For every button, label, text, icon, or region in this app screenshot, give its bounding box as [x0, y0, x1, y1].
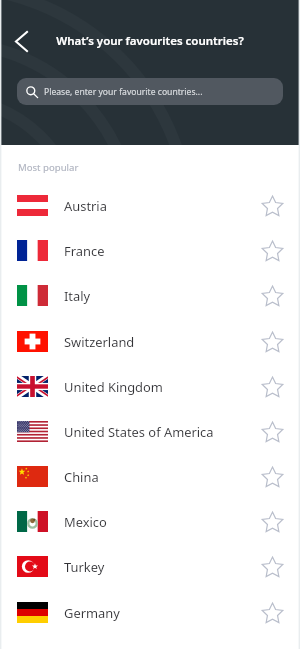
button[interactable]: Mexico — [0, 499, 300, 544]
staticText: Please, enter your favourite countries..… — [44, 86, 203, 98]
button[interactable]: Please, enter your favourite countries..… — [17, 78, 283, 105]
staticText: China — [64, 468, 252, 486]
button[interactable]: Favourite Switzerland — [252, 322, 292, 362]
button[interactable]: Favourite Mexico — [252, 502, 292, 542]
button[interactable]: United Kingdom — [0, 364, 300, 409]
staticText: Mexico — [64, 513, 252, 531]
button[interactable]: Italy — [0, 273, 300, 318]
staticText: France — [64, 242, 252, 260]
button[interactable]: Favourite France — [252, 231, 292, 271]
button[interactable]: Back — [0, 20, 42, 62]
staticText: Germany — [64, 604, 252, 622]
staticText: United States of America — [64, 423, 252, 441]
button[interactable]: United States of America — [0, 409, 300, 454]
button[interactable]: Austria — [0, 183, 300, 228]
button[interactable]: Favourite Italy — [252, 276, 292, 316]
button[interactable]: Germany — [0, 590, 300, 635]
button[interactable]: China — [0, 454, 300, 499]
button[interactable]: Turkey — [0, 544, 300, 589]
staticText: United Kingdom — [64, 378, 252, 396]
staticText: Switzerland — [64, 333, 252, 351]
button[interactable]: France — [0, 228, 300, 273]
button[interactable]: Favourite United Kingdom — [252, 367, 292, 407]
button[interactable]: Favourite United States of America — [252, 412, 292, 452]
button[interactable]: Favourite Germany — [252, 593, 292, 633]
button[interactable]: Favourite Austria — [252, 186, 292, 226]
staticText: What’s your favourites countries? — [42, 33, 258, 49]
button[interactable]: Favourite Turkey — [252, 547, 292, 587]
staticText: Austria — [64, 197, 252, 215]
staticText: Italy — [64, 287, 252, 305]
staticText: Turkey — [64, 558, 252, 576]
button[interactable]: Switzerland — [0, 319, 300, 364]
staticText: Most popular — [18, 161, 79, 174]
button[interactable]: Favourite China — [252, 457, 292, 497]
